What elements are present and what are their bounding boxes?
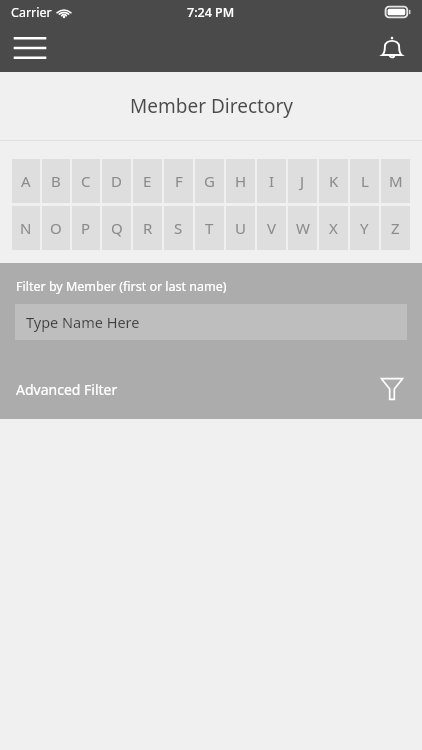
button[interactable]: N bbox=[12, 206, 40, 250]
button[interactable]: L bbox=[350, 159, 379, 203]
button[interactable]: C bbox=[72, 159, 100, 203]
staticText: Q bbox=[111, 218, 123, 238]
staticText: D bbox=[111, 171, 122, 191]
staticText: P bbox=[81, 218, 91, 238]
button[interactable]: O bbox=[42, 206, 70, 250]
button[interactable]: D bbox=[102, 159, 131, 203]
staticText: A bbox=[21, 171, 31, 191]
staticText: Y bbox=[360, 218, 369, 238]
button[interactable]: Q bbox=[102, 206, 131, 250]
staticText: W bbox=[296, 218, 310, 238]
button[interactable]: Z bbox=[381, 206, 410, 250]
staticText: Z bbox=[391, 218, 400, 238]
button[interactable]: J bbox=[288, 159, 317, 203]
button[interactable]: T bbox=[195, 206, 224, 250]
button[interactable]: I bbox=[257, 159, 286, 203]
button[interactable]: P bbox=[72, 206, 100, 250]
button[interactable]: W bbox=[288, 206, 317, 250]
staticText: O bbox=[50, 218, 62, 238]
staticText: Carrier bbox=[11, 4, 52, 21]
button[interactable]: Advanced Filter bbox=[0, 365, 422, 413]
staticText: L bbox=[361, 171, 369, 191]
button[interactable]: H bbox=[226, 159, 255, 203]
staticText: F bbox=[175, 171, 183, 191]
button[interactable]: Notifications bbox=[370, 26, 414, 70]
staticText: Filter by Member (first or last name) bbox=[16, 278, 227, 295]
staticText: M bbox=[389, 171, 403, 191]
button[interactable]: R bbox=[133, 206, 162, 250]
staticText: H bbox=[235, 171, 247, 191]
staticText: Advanced Filter bbox=[16, 380, 118, 399]
staticText: B bbox=[51, 171, 61, 191]
staticText: T bbox=[205, 218, 214, 238]
staticText: R bbox=[143, 218, 153, 238]
staticText: U bbox=[235, 218, 246, 238]
button[interactable]: E bbox=[133, 159, 162, 203]
staticText: J bbox=[300, 171, 305, 191]
staticText: N bbox=[20, 218, 32, 238]
button[interactable]: X bbox=[319, 206, 348, 250]
button[interactable]: K bbox=[319, 159, 348, 203]
staticText: X bbox=[329, 218, 338, 238]
staticText: 7:24 PM bbox=[187, 4, 235, 21]
button[interactable]: G bbox=[195, 159, 224, 203]
button[interactable]: F bbox=[164, 159, 193, 203]
staticText: K bbox=[329, 171, 339, 191]
button[interactable]: Y bbox=[350, 206, 379, 250]
staticText: Type Name Here bbox=[26, 312, 140, 332]
button[interactable]: S bbox=[164, 206, 193, 250]
button[interactable]: Open navigation menu bbox=[8, 26, 52, 70]
button[interactable]: A bbox=[12, 159, 40, 203]
staticText: E bbox=[143, 171, 152, 191]
staticText: S bbox=[174, 218, 183, 238]
button[interactable]: M bbox=[381, 159, 410, 203]
staticText: Member Directory bbox=[130, 93, 293, 119]
button[interactable]: U bbox=[226, 206, 255, 250]
staticText: C bbox=[81, 171, 91, 191]
button[interactable]: V bbox=[257, 206, 286, 250]
staticText: I bbox=[269, 171, 275, 191]
button[interactable]: Type Name Here bbox=[15, 304, 407, 340]
button[interactable]: B bbox=[42, 159, 70, 203]
staticText: V bbox=[267, 218, 277, 238]
staticText: G bbox=[204, 171, 215, 191]
